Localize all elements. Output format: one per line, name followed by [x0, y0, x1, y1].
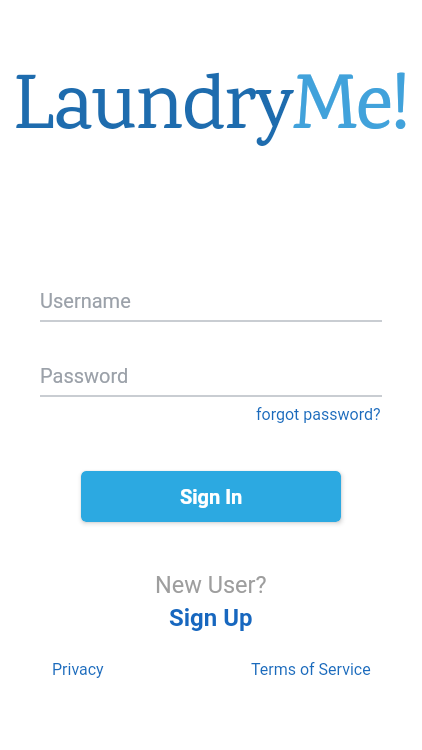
button[interactable]: Sign Up	[167, 602, 255, 634]
staticText: Sign In	[180, 485, 243, 508]
staticText: Terms of Service	[251, 660, 371, 679]
staticText: Username	[40, 289, 131, 312]
staticText: Privacy	[52, 660, 104, 679]
button[interactable]: Privacy	[51, 659, 105, 680]
staticText: Password	[40, 364, 129, 387]
staticText: Sign Up	[169, 604, 253, 632]
button[interactable]: Username	[40, 289, 382, 322]
button[interactable]: Password	[40, 364, 382, 397]
staticText: LaundryMe!	[13, 54, 409, 170]
button[interactable]: Sign In	[81, 471, 341, 522]
button[interactable]: forgot password?	[254, 403, 383, 426]
button[interactable]: Terms of Service	[250, 659, 372, 680]
staticText: forgot password?	[256, 405, 381, 424]
staticText: New User?	[155, 571, 267, 599]
